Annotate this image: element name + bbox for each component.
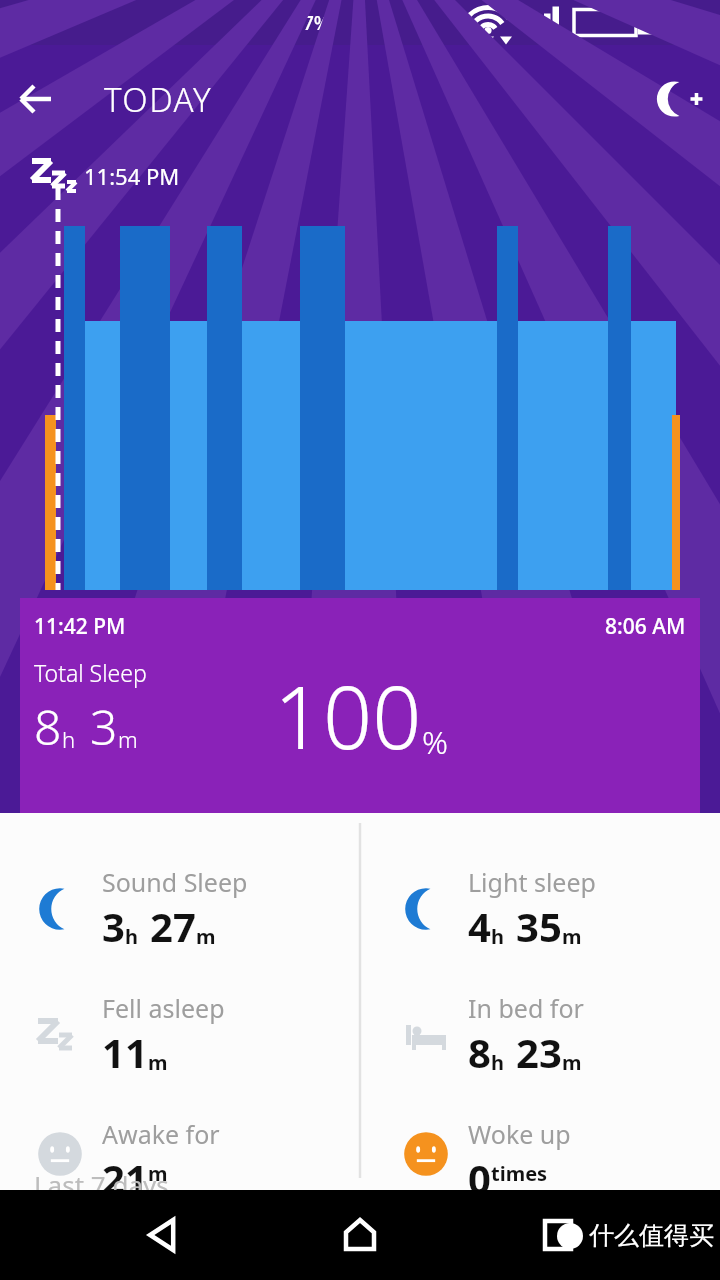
staticText: 3 (102, 899, 125, 953)
staticText: m (118, 724, 138, 754)
staticText: Last 7 days (34, 1167, 169, 1202)
staticText: 37% (292, 10, 330, 36)
staticText: h (491, 1049, 504, 1076)
staticText: 8:06 AM (605, 612, 686, 641)
button[interactable]: Awake for (34, 1117, 220, 1190)
staticText: In bed for (468, 991, 584, 1025)
button[interactable]: Back (0, 63, 72, 135)
button[interactable]: Home (325, 1200, 395, 1270)
staticText: m (148, 1160, 168, 1187)
staticText: h (125, 923, 138, 950)
staticText: 35 (516, 899, 562, 953)
staticText: 27 (150, 899, 196, 953)
staticText: m (562, 923, 582, 950)
staticText: m (148, 1049, 168, 1076)
staticText: h (491, 923, 504, 950)
staticText: 11 (102, 1025, 148, 1079)
staticText: 4 (468, 899, 491, 953)
staticText: 8 (34, 694, 62, 759)
staticText: % (422, 720, 448, 764)
staticText: 9:30 (662, 7, 708, 38)
staticText: Awake for (102, 1117, 220, 1151)
staticText: Fell asleep (102, 991, 225, 1025)
staticText: times (491, 1160, 548, 1187)
staticText: Sound Sleep (102, 865, 248, 899)
staticText: Total Sleep (34, 657, 147, 688)
button[interactable]: Woke up (400, 1117, 571, 1190)
button[interactable]: In bed for (400, 991, 584, 1079)
staticText: m (196, 923, 216, 950)
staticText: TODAY (104, 77, 213, 122)
staticText: Woke up (468, 1117, 571, 1151)
button[interactable]: Back (128, 1200, 198, 1270)
staticText: 0 (468, 1151, 491, 1190)
staticText: 8 (468, 1025, 491, 1079)
staticText: 11:54 PM (84, 161, 180, 191)
button[interactable]: Light sleep (400, 865, 596, 953)
button[interactable]: Recents (523, 1200, 593, 1270)
button[interactable]: Fell asleep (34, 991, 225, 1079)
button[interactable]: Add sleep (636, 57, 720, 141)
staticText: 100 (274, 657, 422, 774)
staticText: Light sleep (468, 865, 596, 899)
button[interactable]: Sound Sleep (34, 865, 248, 953)
staticText: m (562, 1049, 582, 1076)
staticText: 3 (90, 694, 118, 759)
staticText: 23 (516, 1025, 562, 1079)
staticText: h (62, 724, 76, 754)
staticText: 什么值得买 (589, 1220, 714, 1251)
staticText: 21 (102, 1151, 148, 1190)
staticText: 11:42 PM (34, 612, 126, 641)
